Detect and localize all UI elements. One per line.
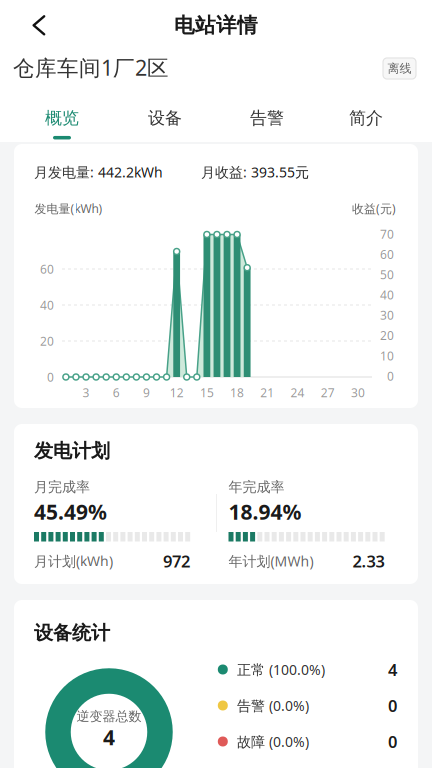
staticText: 正常 (100.0%) [237, 660, 325, 679]
staticText: 仓库车间1厂2区 [13, 53, 169, 82]
staticText: 逆变器总数 [76, 708, 141, 725]
staticText: 故障 (0.0%) [237, 732, 309, 751]
staticText: 设备 [148, 107, 182, 129]
staticText: 393.55元 [247, 162, 309, 182]
staticText: 30 [380, 307, 394, 323]
staticText: 月计划(kWh) [34, 551, 113, 571]
staticText: 发电量(kWh) [35, 200, 103, 217]
staticText: 发电计划 [34, 439, 110, 463]
staticText: 15 [200, 384, 214, 401]
staticText: 设备统计 [34, 621, 110, 645]
staticText: 45.49% [34, 497, 107, 526]
staticText: 0 [387, 368, 394, 384]
staticText: 4 [388, 658, 397, 681]
staticText: 0 [47, 369, 54, 385]
staticText: 972 [163, 550, 190, 572]
staticText: 0 [388, 694, 397, 717]
staticText: 70 [380, 226, 394, 242]
button[interactable]: 告警 [242, 101, 292, 139]
staticText: 18 [230, 384, 244, 401]
staticText: 告警 (0.0%) [237, 696, 309, 715]
staticText: 告警 [250, 107, 284, 129]
staticText: 3 [82, 384, 89, 401]
staticText: 6 [113, 384, 120, 401]
button[interactable]: 概览 [37, 101, 87, 139]
staticText: 简介 [349, 107, 383, 129]
staticText: 概览 [45, 107, 79, 129]
staticText: 20 [380, 327, 394, 344]
staticText: 18.94% [228, 497, 301, 526]
staticText: 60 [40, 261, 54, 277]
staticText: 4 [103, 723, 115, 751]
staticText: 442.2kWh [94, 162, 163, 182]
staticText: 年完成率 [228, 478, 284, 496]
staticText: 月完成率 [34, 478, 90, 496]
staticText: 月收益: [201, 162, 247, 182]
staticText: 2.33 [352, 550, 384, 572]
staticText: 27 [321, 384, 335, 401]
button[interactable]: 设备 [140, 101, 190, 139]
staticText: 10 [380, 347, 394, 364]
staticText: 40 [380, 287, 394, 303]
staticText: 60 [380, 246, 394, 262]
button[interactable]: 简介 [341, 101, 391, 139]
button[interactable]: Back [18, 8, 56, 42]
staticText: 24 [290, 384, 304, 401]
staticText: 30 [351, 384, 365, 401]
staticText: 12 [170, 384, 184, 401]
staticText: 20 [40, 333, 54, 349]
staticText: 21 [260, 384, 274, 401]
staticText: 月发电量: [34, 162, 94, 182]
staticText: 离线 [387, 61, 411, 76]
staticText: 0 [388, 730, 397, 753]
staticText: 40 [40, 297, 54, 313]
staticText: 9 [143, 384, 150, 401]
staticText: 年计划(MWh) [228, 551, 313, 571]
staticText: 50 [380, 266, 394, 283]
staticText: 电站详情 [174, 13, 258, 38]
staticText: 收益(元) [352, 200, 396, 217]
